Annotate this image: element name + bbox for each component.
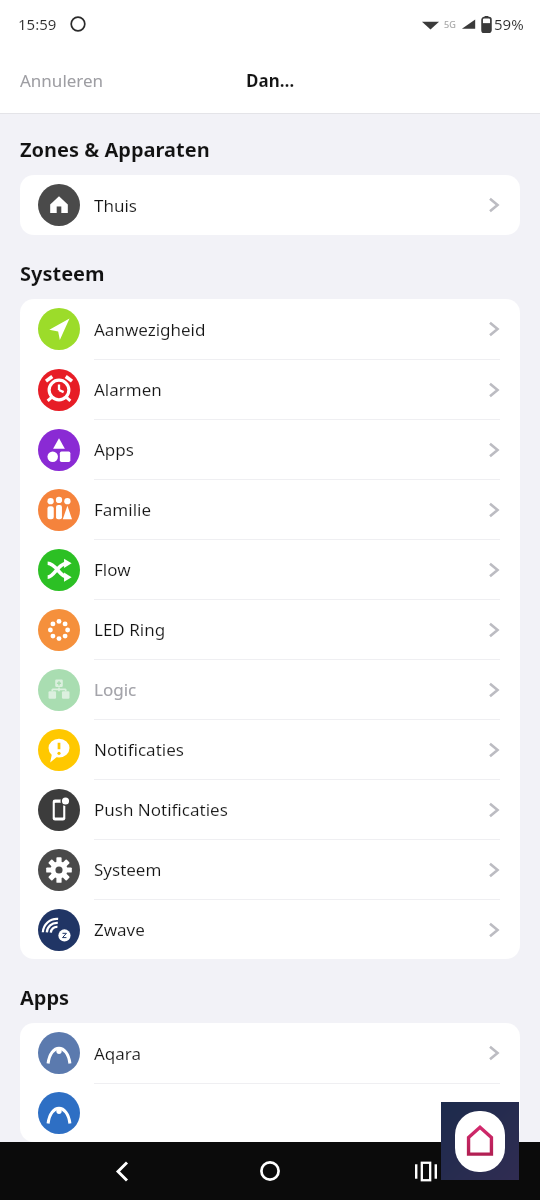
staticText: Familie	[94, 498, 486, 521]
staticText: Logic	[94, 678, 486, 701]
button[interactable]: Familie	[20, 480, 520, 539]
staticText: Aqara	[94, 1042, 486, 1065]
staticText: Apps	[20, 984, 70, 1011]
staticText: Annuleren	[20, 69, 104, 92]
staticText: Systeem	[20, 260, 105, 287]
button[interactable]: Aanwezigheid	[20, 299, 520, 359]
button[interactable]: Thuis	[20, 175, 520, 235]
button[interactable]	[20, 1084, 520, 1142]
staticText: Aanwezigheid	[94, 318, 486, 341]
staticText: Zones & Apparaten	[20, 136, 210, 163]
button[interactable]: Homey overlay	[441, 1102, 519, 1180]
staticText: Push Notificaties	[94, 798, 486, 821]
button[interactable]: Back	[100, 1149, 144, 1193]
button[interactable]: Annuleren	[0, 59, 124, 102]
staticText: Thuis	[94, 194, 486, 217]
staticText: Dan…	[246, 69, 295, 92]
staticText: 59%	[494, 14, 524, 34]
staticText	[94, 1102, 486, 1125]
staticText: 15:59	[18, 14, 57, 34]
button[interactable]: Home	[248, 1149, 292, 1193]
button[interactable]: Apps	[20, 420, 520, 479]
button[interactable]: Alarmen	[20, 360, 520, 419]
staticText: Systeem	[94, 858, 486, 881]
button[interactable]: Recent apps	[404, 1149, 448, 1193]
staticText: Alarmen	[94, 378, 486, 401]
button[interactable]: Zwave	[20, 900, 520, 959]
staticText: LED Ring	[94, 618, 486, 641]
button[interactable]: Systeem	[20, 840, 520, 899]
button[interactable]: Aqara	[20, 1023, 520, 1083]
button[interactable]: Push Notificaties	[20, 780, 520, 839]
button[interactable]: LED Ring	[20, 600, 520, 659]
staticText: Zwave	[94, 918, 486, 941]
staticText: Notificaties	[94, 738, 486, 761]
staticText: Apps	[94, 438, 486, 461]
button[interactable]: Flow	[20, 540, 520, 599]
button[interactable]: Notificaties	[20, 720, 520, 779]
button[interactable]: Logic	[20, 660, 520, 719]
staticText: 5G	[444, 18, 456, 30]
staticText: Flow	[94, 558, 486, 581]
